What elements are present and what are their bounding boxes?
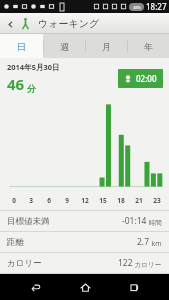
button[interactable]: Back xyxy=(20,274,50,300)
staticText: 23 xyxy=(153,196,161,205)
staticText: 6 xyxy=(47,196,51,205)
button[interactable]: 日 xyxy=(0,34,43,58)
staticText: 2.7 xyxy=(137,236,150,248)
button[interactable]: 週 xyxy=(43,34,85,58)
staticText: 0 xyxy=(12,196,16,205)
staticText: 18 xyxy=(117,196,125,205)
staticText: 15 xyxy=(99,196,107,205)
staticText: 週 xyxy=(60,41,69,52)
button[interactable]: カロリー xyxy=(0,252,169,273)
staticText: 年 xyxy=(144,41,153,52)
staticText: 46 xyxy=(7,74,25,94)
staticText: 122 xyxy=(118,257,133,269)
button[interactable]: 年 xyxy=(127,34,169,58)
button[interactable]: 月 xyxy=(85,34,127,58)
staticText: 距離 xyxy=(7,237,24,248)
button[interactable]: 02:00 xyxy=(118,69,163,88)
staticText: 9 xyxy=(65,196,69,205)
staticText: カロリー xyxy=(7,258,42,269)
staticText: 02:00 xyxy=(136,73,157,84)
staticText: 21 xyxy=(135,196,143,205)
staticText: 18:27 xyxy=(146,1,167,12)
button[interactable]: 目標値未満 xyxy=(0,210,169,231)
staticText: 日 xyxy=(17,41,26,52)
staticText: 分 xyxy=(27,83,36,94)
staticText: 時間 xyxy=(147,218,162,227)
button[interactable]: 距離 xyxy=(0,231,169,252)
button[interactable]: Back xyxy=(4,18,16,30)
staticText: 12 xyxy=(81,196,89,205)
staticText: 48% xyxy=(133,5,141,10)
button[interactable]: Home xyxy=(70,274,100,300)
staticText: km xyxy=(150,239,162,248)
staticText: 3 xyxy=(29,196,33,205)
staticText: 月 xyxy=(102,41,111,52)
staticText: -01:14 xyxy=(122,215,147,227)
button[interactable]: Recents xyxy=(119,274,149,300)
staticText: ウォーキング xyxy=(38,17,100,30)
staticText: 目標値未満 xyxy=(7,216,50,227)
staticText: カロリー xyxy=(133,260,162,269)
staticText: 2014年5月30日 xyxy=(7,62,60,72)
